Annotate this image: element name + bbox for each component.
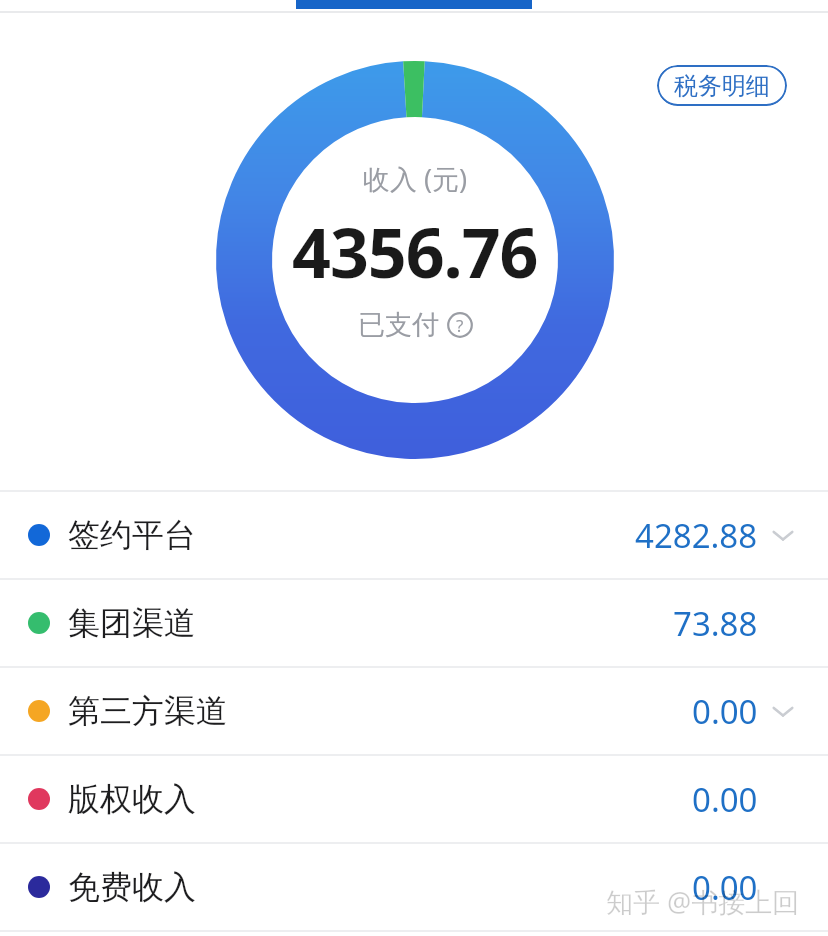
staticText: 版权收入 <box>68 779 196 819</box>
staticText: 0.00 <box>692 689 758 734</box>
staticText: 73.88 <box>673 601 758 646</box>
staticText: 收入 (元) <box>363 160 468 197</box>
staticText: 0.00 <box>692 777 758 822</box>
button[interactable]: 税务明细 <box>657 65 787 106</box>
button[interactable]: Help about paid amount <box>447 312 473 338</box>
button[interactable]: 版权收入 <box>0 756 828 842</box>
staticText: 第三方渠道 <box>68 691 228 731</box>
staticText: 免费收入 <box>68 867 196 907</box>
button[interactable]: 集团渠道 <box>0 580 828 666</box>
staticText: 4356.76 <box>292 205 538 298</box>
button[interactable]: 免费收入 <box>0 844 828 930</box>
staticText: ? <box>456 314 464 337</box>
staticText: 知乎 @书接上回 <box>606 883 800 920</box>
staticText: 签约平台 <box>68 515 196 555</box>
button[interactable]: 第三方渠道 <box>0 668 828 754</box>
staticText: 税务明细 <box>674 71 770 101</box>
staticText: 4282.88 <box>635 513 758 558</box>
staticText: 0.00 <box>692 865 758 910</box>
staticText: 集团渠道 <box>68 603 196 643</box>
staticText: 已支付 <box>358 308 439 342</box>
button[interactable]: 签约平台 <box>0 492 828 578</box>
